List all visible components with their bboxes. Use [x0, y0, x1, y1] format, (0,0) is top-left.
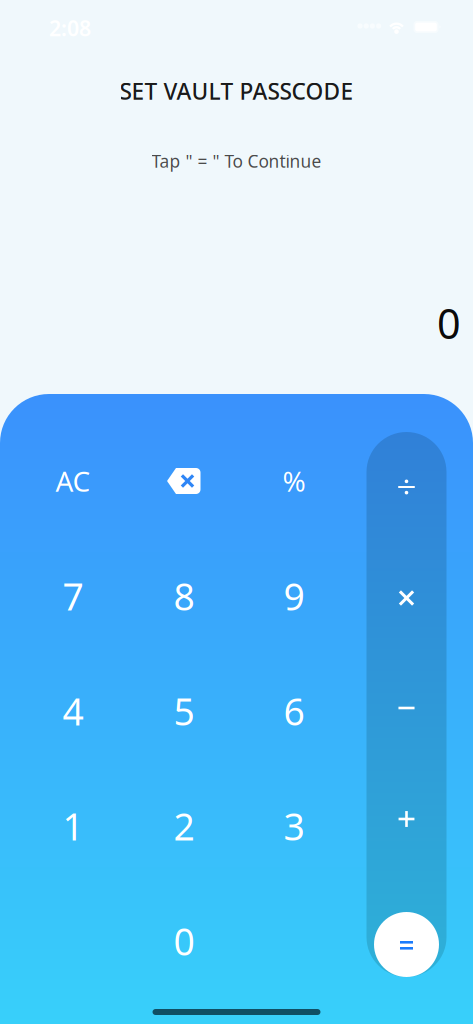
button[interactable]: 6 [246, 663, 342, 759]
staticText: 6 [283, 686, 304, 736]
staticText: 8 [173, 571, 194, 621]
button[interactable]: AC [25, 433, 121, 529]
staticText: AC [55, 462, 90, 500]
staticText: 2:08 [49, 14, 91, 42]
button[interactable]: Delete [136, 433, 232, 529]
staticText: % [282, 462, 305, 500]
button[interactable]: 1 [25, 778, 121, 874]
staticText: 7 [62, 571, 83, 621]
staticText: Tap " = " To Continue [151, 149, 321, 172]
button[interactable]: 3 [246, 778, 342, 874]
button[interactable]: % [246, 433, 342, 529]
staticText: 1 [62, 801, 83, 851]
button[interactable]: Subtract [366, 668, 446, 748]
staticText: 0 [173, 916, 194, 966]
button[interactable]: Divide [366, 447, 446, 527]
staticText: 3 [283, 801, 304, 851]
button[interactable]: 8 [136, 548, 232, 644]
staticText: 2 [173, 801, 194, 851]
staticText: 4 [62, 686, 83, 736]
button[interactable]: 2 [136, 778, 232, 874]
button[interactable]: Multiply [366, 558, 446, 638]
staticText: SET VAULT PASSCODE [119, 76, 353, 106]
button[interactable]: Add [366, 779, 446, 859]
button[interactable]: 5 [136, 663, 232, 759]
button[interactable]: 9 [246, 548, 342, 644]
button[interactable]: 4 [25, 663, 121, 759]
button[interactable]: 7 [25, 548, 121, 644]
staticText: 5 [173, 686, 194, 736]
button[interactable]: 0 [136, 893, 232, 989]
staticText: 9 [283, 571, 304, 621]
staticText: 0 [437, 296, 461, 350]
button[interactable]: Equals [374, 912, 439, 977]
